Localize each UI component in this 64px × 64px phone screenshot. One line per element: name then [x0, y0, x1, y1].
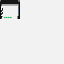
button[interactable] — [0, 4, 20, 5]
button[interactable] — [0, 0, 20, 4]
button[interactable] — [0, 6, 20, 8]
button[interactable] — [0, 8, 20, 12]
button[interactable] — [0, 5, 20, 6]
button[interactable] — [0, 12, 20, 16]
